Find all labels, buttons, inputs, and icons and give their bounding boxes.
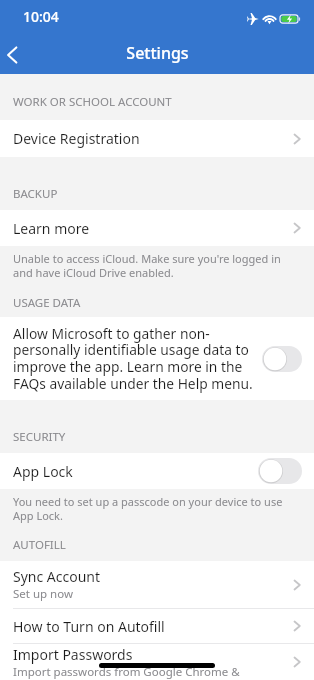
staticText: How to Turn on Autofill [13, 617, 165, 636]
button[interactable]: Allow Microsoft to gather non-personally… [0, 317, 314, 400]
button[interactable]: Learn more [0, 210, 314, 246]
staticText: Sync Account [13, 567, 101, 586]
button[interactable]: Toggle [258, 458, 302, 484]
button[interactable]: Sync Account [0, 561, 314, 608]
staticText: SECURITY [13, 429, 66, 445]
staticText: Settings [126, 42, 189, 64]
staticText: App Lock [13, 462, 73, 481]
staticText: BACKUP [13, 186, 58, 202]
staticText: Import Passwords [13, 645, 133, 664]
staticText: WORK OR SCHOOL ACCOUNT [13, 94, 172, 110]
staticText: Allow Microsoft to gather non-personally… [13, 324, 262, 393]
button[interactable]: Device Registration [0, 120, 314, 157]
button[interactable]: App Lock [0, 453, 314, 489]
button[interactable]: Back [0, 32, 24, 74]
staticText: Device Registration [13, 129, 140, 148]
staticText: AUTOFILL [13, 537, 66, 553]
button[interactable]: How to Turn on Autofill [0, 609, 314, 643]
staticText: Set up now [13, 586, 73, 602]
staticText: You need to set up a passcode on your de… [13, 494, 290, 523]
staticText: Unable to access iCloud. Make sure you'r… [13, 251, 290, 280]
staticText: 10:04 [23, 7, 59, 26]
button[interactable]: Toggle [262, 346, 302, 372]
staticText: Learn more [13, 219, 90, 238]
button[interactable]: Import Passwords [0, 644, 314, 680]
staticText: Import passwords from Google Chrome & [13, 664, 240, 680]
staticText: USAGE DATA [13, 295, 81, 311]
